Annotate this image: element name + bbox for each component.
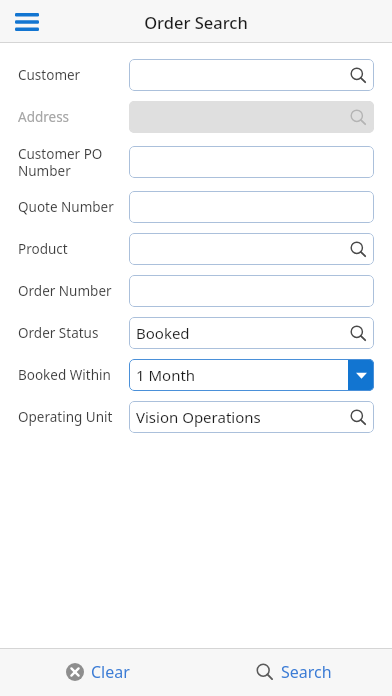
button[interactable]: Customer	[0, 54, 392, 96]
staticText: Customer PO Number	[18, 145, 103, 180]
staticText: 1 Month	[136, 365, 196, 385]
button[interactable]: Booked Within	[0, 354, 392, 396]
staticText: Operating Unit	[18, 408, 113, 426]
staticText: Quote Number	[18, 198, 114, 216]
button[interactable]: Clear	[0, 648, 196, 696]
button: Address	[0, 96, 392, 138]
staticText: Search	[281, 661, 332, 683]
staticText: Customer	[18, 66, 81, 84]
button[interactable]: Order Status	[0, 312, 392, 354]
staticText: Product	[18, 240, 68, 258]
button[interactable]: Customer PO Number	[0, 138, 392, 186]
button[interactable]: Quote Number	[0, 186, 392, 228]
staticText: Order Search	[144, 11, 248, 33]
staticText: Order Number	[18, 282, 112, 300]
button[interactable]: Search	[196, 648, 392, 696]
button[interactable]: Product	[0, 228, 392, 270]
button[interactable]: Operating Unit	[0, 396, 392, 438]
staticText: Booked Within	[18, 366, 111, 384]
button[interactable]: Open dropdown	[348, 359, 374, 391]
staticText: Address	[18, 108, 70, 126]
staticText: Order Status	[18, 324, 99, 342]
button[interactable]: Menu	[8, 3, 46, 41]
staticText: Vision Operations	[136, 407, 261, 427]
staticText: Clear	[91, 661, 130, 683]
button[interactable]: Order Number	[0, 270, 392, 312]
staticText: Booked	[136, 323, 190, 343]
